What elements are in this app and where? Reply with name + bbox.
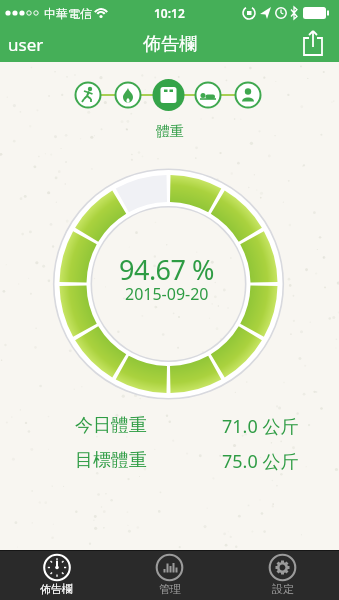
button[interactable] bbox=[111, 78, 145, 112]
staticText: 設定 bbox=[272, 582, 294, 596]
staticText: user bbox=[8, 33, 44, 56]
staticText: 94.67 % bbox=[119, 251, 214, 288]
staticText: 10:12 bbox=[154, 5, 185, 21]
staticText: 目標體重 bbox=[75, 449, 147, 472]
staticText: 75.0 公斤 bbox=[222, 449, 299, 474]
staticText: 71.0 公斤 bbox=[222, 414, 299, 439]
button[interactable] bbox=[71, 78, 105, 112]
staticText: 今日體重 bbox=[75, 414, 147, 437]
staticText: 體重 bbox=[156, 123, 184, 141]
button[interactable] bbox=[231, 78, 265, 112]
button[interactable]: 設定 bbox=[226, 550, 339, 600]
staticText: 佈告欄 bbox=[143, 33, 197, 56]
button[interactable] bbox=[191, 78, 225, 112]
button[interactable] bbox=[294, 26, 339, 62]
button[interactable] bbox=[152, 78, 186, 112]
button[interactable]: user bbox=[0, 26, 60, 62]
button[interactable]: 佈告欄 bbox=[0, 550, 113, 600]
staticText: 管理 bbox=[159, 582, 181, 596]
button[interactable]: 管理 bbox=[113, 550, 226, 600]
staticText: 佈告欄 bbox=[40, 582, 73, 596]
staticText: 中華電信 bbox=[44, 6, 92, 21]
staticText: 2015-09-20 bbox=[125, 283, 209, 305]
